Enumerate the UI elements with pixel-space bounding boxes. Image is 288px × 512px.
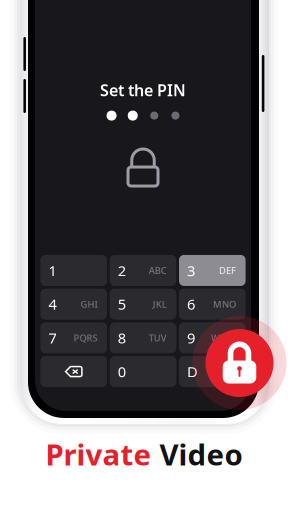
staticText: WXYZ [211, 332, 236, 344]
staticText: 3 [187, 261, 195, 280]
staticText: 4 [48, 294, 56, 314]
button[interactable]: D [179, 356, 246, 387]
staticText: D [187, 362, 198, 381]
staticText: PQRS [73, 332, 97, 344]
staticText: 6 [187, 294, 195, 314]
staticText: DEF [219, 264, 236, 277]
staticText: Set the PIN [100, 79, 186, 101]
staticText: JKL [153, 298, 167, 310]
staticText: 0 [118, 362, 126, 381]
staticText: TUV [149, 332, 167, 344]
staticText [151, 434, 159, 473]
button[interactable]: 7 [40, 322, 107, 353]
staticText: 9 [187, 328, 195, 348]
staticText: ABC [149, 264, 167, 277]
button[interactable]: 9 [179, 322, 246, 353]
button[interactable]: 3 [179, 255, 246, 286]
staticText: Private [45, 434, 151, 473]
button[interactable]: 5 [110, 289, 176, 320]
staticText: 2 [118, 261, 126, 280]
button[interactable]: 2 [110, 255, 176, 286]
button[interactable]: Delete [40, 356, 107, 387]
staticText: 8 [118, 328, 126, 348]
staticText: MNO [213, 298, 236, 310]
staticText: 1 [48, 261, 56, 280]
staticText: 5 [118, 294, 126, 314]
button[interactable]: 4 [40, 289, 107, 320]
staticText: GHI [80, 298, 97, 310]
button[interactable]: 6 [179, 289, 246, 320]
button[interactable]: 0 [110, 356, 176, 387]
button[interactable]: 1 [40, 255, 107, 286]
button[interactable]: 8 [110, 322, 176, 353]
staticText: 7 [48, 328, 56, 348]
staticText: Video [159, 434, 242, 473]
